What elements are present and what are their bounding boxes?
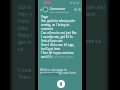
button[interactable]: Back <box>38 6 82 13</box>
button[interactable]: Video call <box>74 8 77 11</box>
staticText: see ba <box>86 38 108 45</box>
staticText: last seen today <box>50 11 69 13</box>
button[interactable]: Back <box>39 8 43 12</box>
staticText: ooh you and <box>86 4 108 18</box>
staticText: Got it Hey, y Hafa joke Baby I gen b ck <box>18 4 37 53</box>
button[interactable]: More options <box>78 8 81 11</box>
staticText: Page You got into what you're seeing, so… <box>41 15 78 59</box>
staticText: Someone Particular Here <box>50 6 74 11</box>
button[interactable]: Record voice message <box>57 80 65 88</box>
button[interactable] <box>41 73 59 76</box>
staticText: I took Then <box>18 67 37 81</box>
staticText: today at some point <box>45 55 75 59</box>
staticText: Write a message to someone today over he… <box>40 68 80 75</box>
